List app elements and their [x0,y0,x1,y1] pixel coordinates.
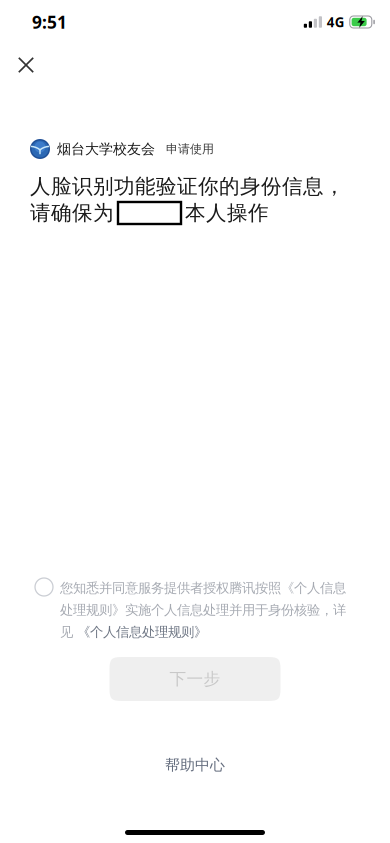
staticText: 您知悉并同意服务提供者授权腾讯按照《个人信息 [60,580,346,596]
staticText: 本人操作 [185,200,269,226]
staticText: 申请使用 [166,141,214,156]
button[interactable]: 帮助中心 [150,746,240,784]
button[interactable]: 下一步 [109,657,280,701]
staticText: 4G [327,13,345,31]
staticText: 烟台大学校友会 [57,140,155,158]
staticText: 帮助中心 [165,756,225,774]
staticText: 9:51 [32,10,67,34]
staticText: 见 《个人信息处理规则》 [60,624,207,640]
button[interactable]: Agree to terms [35,578,53,596]
staticText: 处理规则》实施个人信息处理并用于身份核验，详 [60,602,346,618]
staticText: 请确保为 [30,200,114,226]
button[interactable]: Close [9,48,43,82]
staticText: 人脸识别功能验证你的身份信息， [30,174,345,199]
staticText: 下一步 [169,668,220,689]
